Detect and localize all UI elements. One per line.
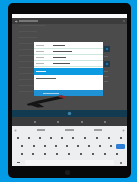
button[interactable]: Tool: [33, 120, 36, 123]
button[interactable]: Settings: [14, 129, 17, 132]
button[interactable]: [34, 55, 103, 60]
button[interactable]: [61, 143, 72, 149]
button[interactable]: [103, 135, 115, 141]
button[interactable]: [16, 143, 28, 149]
button[interactable]: Symbols: [14, 160, 23, 165]
button[interactable]: [75, 151, 87, 157]
button[interactable]: [28, 143, 39, 149]
button[interactable]: Navigate up: [12, 18, 127, 24]
button[interactable]: [27, 151, 39, 157]
button[interactable]: [91, 135, 103, 141]
button[interactable]: Emoji: [116, 160, 125, 165]
button[interactable]: Voice input: [122, 129, 125, 132]
button[interactable]: [56, 135, 67, 141]
button[interactable]: [51, 151, 63, 157]
button[interactable]: [39, 143, 50, 149]
button[interactable]: [87, 151, 99, 157]
button[interactable]: [99, 151, 111, 157]
button[interactable]: [34, 135, 45, 141]
button[interactable]: [45, 135, 56, 141]
button[interactable]: [34, 49, 103, 54]
button[interactable]: [34, 75, 103, 81]
button[interactable]: [72, 143, 83, 149]
button[interactable]: [34, 43, 103, 48]
other: Navigate up: [14, 19, 18, 23]
button[interactable]: [34, 68, 103, 75]
button[interactable]: [34, 90, 103, 96]
button[interactable]: Tool: [80, 120, 83, 123]
button[interactable]: More options: [122, 19, 126, 23]
button[interactable]: [16, 151, 27, 157]
button[interactable]: [12, 135, 23, 141]
button[interactable]: [79, 135, 91, 141]
button[interactable]: Tool: [56, 120, 59, 123]
button[interactable]: [34, 61, 103, 66]
button[interactable]: [50, 143, 61, 149]
button[interactable]: [67, 135, 79, 141]
button[interactable]: [23, 135, 34, 141]
button[interactable]: [63, 151, 75, 157]
button[interactable]: [115, 135, 127, 141]
button[interactable]: [111, 151, 123, 157]
button[interactable]: Enter: [116, 144, 125, 149]
button[interactable]: [94, 143, 105, 149]
button[interactable]: [105, 143, 116, 149]
button[interactable]: [39, 151, 51, 157]
button[interactable]: [83, 143, 94, 149]
button[interactable]: Tool: [103, 120, 106, 123]
